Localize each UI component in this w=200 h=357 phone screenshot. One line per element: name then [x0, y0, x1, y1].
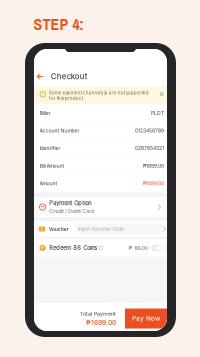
staticText: ₱1699.00	[86, 318, 116, 326]
staticText: Pay Now	[132, 315, 160, 322]
staticText: Some payment channel(s) are not supporte…	[49, 90, 149, 101]
staticText: Payment Option	[49, 200, 91, 207]
staticText: 0123456789	[135, 128, 164, 134]
staticText: Biller	[39, 110, 50, 116]
staticText: Input Voucher Code	[78, 226, 124, 232]
button[interactable]: Voucher	[33, 221, 168, 237]
staticText: Credit / Debit Card	[49, 208, 94, 214]
staticText: PLDT	[151, 110, 164, 116]
button[interactable]: Checkout	[34, 66, 167, 86]
button[interactable]: Redeem coins toggle	[147, 245, 161, 251]
staticText: 0287654321	[135, 145, 164, 151]
button[interactable]: Pay Now	[125, 308, 167, 328]
staticText: Checkout	[51, 72, 88, 81]
staticText: Redeem 86 Coins	[49, 244, 97, 251]
staticText: ₱ 86.00	[128, 245, 147, 251]
staticText: Account Number	[39, 128, 79, 134]
staticText: ₱1899.00	[143, 180, 164, 186]
staticText: Identifier	[39, 145, 60, 151]
staticText: Amount	[39, 180, 57, 186]
staticText: ₱	[41, 245, 44, 251]
staticText: ₱1899.00	[143, 163, 164, 169]
staticText: Voucher	[49, 226, 69, 232]
button[interactable]: Dismiss	[159, 90, 164, 96]
staticText: STEP 4:	[33, 13, 83, 35]
staticText: Bill Amount	[39, 163, 64, 169]
button[interactable]: Payment Option	[34, 197, 167, 217]
staticText: Total Payment	[80, 310, 116, 317]
